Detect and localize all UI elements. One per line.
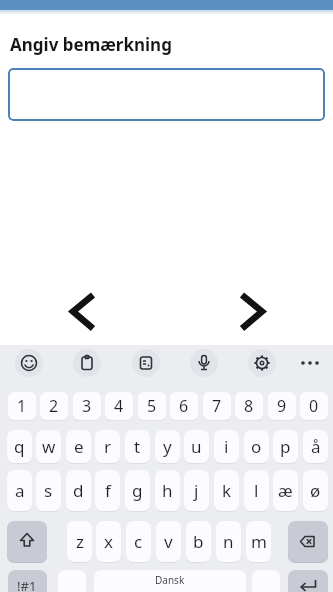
staticText: 1 <box>17 395 27 417</box>
staticText: p <box>280 435 291 458</box>
button[interactable]: k <box>214 470 239 511</box>
staticText: 2 <box>49 395 59 417</box>
button[interactable]: e <box>66 430 91 463</box>
staticText: h <box>162 479 173 502</box>
staticText: i <box>224 435 229 458</box>
button[interactable] <box>73 349 101 377</box>
button[interactable]: 4 <box>105 392 133 420</box>
staticText: c <box>134 530 143 553</box>
button[interactable]: 3 <box>73 392 101 420</box>
button[interactable]: w <box>36 430 61 463</box>
button[interactable]: s <box>36 470 61 511</box>
staticText: e <box>74 435 84 458</box>
staticText: 4 <box>114 395 124 417</box>
button[interactable] <box>94 570 246 592</box>
staticText: m <box>251 530 267 553</box>
button[interactable] <box>296 349 324 377</box>
button[interactable]: a <box>7 470 32 511</box>
button[interactable]: 0 <box>300 392 328 420</box>
button[interactable]: q <box>7 430 32 463</box>
button[interactable]: h <box>155 470 180 511</box>
staticText: z <box>76 530 84 553</box>
button[interactable]: n <box>216 521 241 562</box>
button[interactable]: o <box>244 430 269 463</box>
staticText: x <box>104 530 113 553</box>
button[interactable] <box>8 68 325 121</box>
button[interactable]: l <box>244 470 269 511</box>
staticText: b <box>193 530 204 553</box>
staticText: a <box>15 479 25 502</box>
button[interactable]: d <box>66 470 91 511</box>
button[interactable] <box>248 349 276 377</box>
staticText: !#1 <box>17 577 37 592</box>
staticText: y <box>163 435 172 458</box>
button[interactable] <box>288 570 328 592</box>
staticText: t <box>134 435 141 458</box>
staticText: 0 <box>309 395 319 417</box>
button[interactable]: x <box>96 521 121 562</box>
button[interactable]: g <box>125 470 150 511</box>
button[interactable]: m <box>246 521 271 562</box>
staticText: w <box>42 435 56 458</box>
staticText: j <box>194 479 199 502</box>
button[interactable]: 1 <box>8 392 36 420</box>
button[interactable]: å <box>303 430 328 463</box>
staticText: 7 <box>212 395 222 417</box>
button[interactable] <box>132 349 160 377</box>
button[interactable] <box>15 349 43 377</box>
button[interactable]: 9 <box>268 392 296 420</box>
staticText: ø <box>310 479 321 502</box>
button[interactable] <box>190 349 218 377</box>
button[interactable]: 6 <box>170 392 198 420</box>
staticText: 5 <box>147 395 157 417</box>
button[interactable] <box>7 521 47 562</box>
staticText: 6 <box>179 395 189 417</box>
staticText: v <box>164 530 173 553</box>
staticText: g <box>132 479 143 502</box>
button[interactable]: 7 <box>203 392 231 420</box>
staticText: l <box>254 479 259 502</box>
button[interactable]: u <box>184 430 209 463</box>
staticText: 8 <box>244 395 254 417</box>
staticText: r <box>104 435 112 458</box>
staticText: o <box>251 435 262 458</box>
staticText: 3 <box>82 395 92 417</box>
button[interactable] <box>231 290 273 334</box>
staticText: q <box>14 435 25 458</box>
button[interactable]: z <box>67 521 92 562</box>
staticText: æ <box>278 479 293 502</box>
staticText: f <box>105 479 111 502</box>
button[interactable]: i <box>214 430 239 463</box>
staticText: å <box>311 435 321 458</box>
button[interactable]: j <box>184 470 209 511</box>
button[interactable]: æ <box>273 470 298 511</box>
button[interactable]: c <box>126 521 151 562</box>
staticText: n <box>223 530 234 553</box>
button[interactable]: b <box>186 521 211 562</box>
staticText: d <box>73 479 84 502</box>
button[interactable] <box>288 521 328 562</box>
button[interactable]: ø <box>303 470 328 511</box>
staticText: 9 <box>277 395 287 417</box>
button[interactable] <box>8 570 47 592</box>
button[interactable]: r <box>95 430 120 463</box>
button[interactable]: t <box>125 430 150 463</box>
staticText: s <box>44 479 53 502</box>
button[interactable]: 5 <box>138 392 166 420</box>
staticText: Dansk <box>155 573 185 587</box>
staticText: u <box>191 435 202 458</box>
staticText: Angiv bemærkning <box>10 33 172 56</box>
button[interactable]: p <box>273 430 298 463</box>
button[interactable]: v <box>156 521 181 562</box>
button[interactable] <box>62 290 104 334</box>
button[interactable]: f <box>95 470 120 511</box>
button[interactable]: 8 <box>235 392 263 420</box>
button[interactable]: y <box>155 430 180 463</box>
staticText: k <box>222 479 232 502</box>
button[interactable]: 2 <box>40 392 68 420</box>
